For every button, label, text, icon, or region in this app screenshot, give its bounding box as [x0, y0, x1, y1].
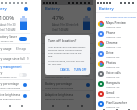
staticText: Show battery percentage [45, 86, 74, 89]
staticText: Battery Saver is off [0, 39, 14, 42]
button[interactable]: Battery usage since full charge [0, 54, 30, 63]
staticText: Battery [45, 6, 60, 12]
button[interactable]: Phone [96, 29, 137, 39]
button[interactable]: Adaptive brightness [42, 91, 93, 101]
staticText: Battery [0, 71, 3, 75]
staticText: Battery percentage [45, 82, 73, 86]
button[interactable]: Recent apps [125, 109, 133, 110]
button[interactable]: Gmail [96, 89, 137, 99]
button[interactable]: Battery usage [42, 44, 93, 53]
staticText: Adaptive brightness [0, 93, 21, 97]
staticText: Used for 19% [106, 35, 121, 38]
staticText: TURN OFF [74, 68, 87, 72]
button[interactable]: Voice calls [96, 69, 137, 79]
staticText: Pixel Launcher [106, 101, 127, 105]
staticText: app. [48, 54, 53, 57]
staticText: Battery [45, 71, 56, 75]
button[interactable]: Recent apps [78, 102, 86, 110]
staticText: About 9 hr 30 min left [0, 23, 20, 27]
staticText: Used for 5% [106, 75, 120, 78]
staticText: Drive [106, 51, 114, 55]
staticText: Battery management [45, 65, 75, 69]
button[interactable]: Photos [96, 59, 137, 69]
staticText: Adaptive battery is on [45, 75, 70, 78]
button[interactable]: Maps Preview [96, 19, 137, 29]
button[interactable]: Battery percentage [42, 80, 93, 90]
staticText: Until 7:00 AM [0, 28, 16, 32]
staticText: Turn off location? [48, 38, 77, 43]
button[interactable]: Back [100, 109, 108, 110]
staticText: Chrome [106, 41, 118, 45]
button[interactable]: Battery usage since full charge [42, 54, 93, 63]
button[interactable]: TURN OFF [73, 67, 88, 73]
staticText: To fix this issue, you can turn off loca… [48, 59, 88, 62]
button[interactable]: Hangouts [96, 79, 137, 89]
button[interactable]: Home [64, 102, 72, 110]
button[interactable]: Battery [42, 70, 93, 79]
button[interactable]: Recent apps [18, 102, 26, 110]
staticText: Adaptive battery is on [0, 75, 17, 78]
button[interactable]: Drive [96, 49, 137, 59]
staticText: Battery [0, 6, 7, 12]
staticText: Optimise brightness level [0, 97, 21, 100]
button[interactable]: Home [6, 102, 14, 110]
staticText: 47% [52, 14, 64, 22]
staticText: CANCEL [60, 68, 70, 72]
staticText: Your phone can't manage battery correctl… [48, 45, 88, 48]
staticText: Used for 4% [106, 85, 120, 88]
staticText: Phone [106, 31, 116, 35]
staticText: Optimise brightness level [45, 97, 74, 100]
staticText: Battery usage [0, 47, 12, 51]
staticText: Used for 17% [106, 45, 121, 48]
staticText: Adaptive brightness [45, 93, 74, 97]
button[interactable]: Battery usage [0, 44, 30, 53]
staticText: Until 7:00 AM [52, 28, 69, 32]
staticText: Use Battery Saver [45, 35, 70, 39]
staticText: About 9 hr 30 min left [52, 23, 79, 27]
staticText: Used for 6% [106, 65, 120, 68]
staticText: Used for 28% [106, 25, 121, 28]
staticText: Battery [99, 6, 114, 12]
button[interactable]: Use Battery Saver [42, 34, 93, 43]
staticText: Battery usage [45, 47, 65, 51]
button[interactable]: Account [87, 7, 91, 11]
staticText: Voice calls [106, 71, 121, 75]
staticText: for this app. [48, 62, 62, 65]
staticText: Used for 8% [106, 55, 120, 58]
button[interactable]: Account [24, 7, 28, 11]
button[interactable]: CANCEL [59, 67, 71, 73]
staticText: Battery Saver is off [45, 39, 67, 42]
button[interactable]: Adaptive brightness [0, 91, 30, 101]
button[interactable]: Home [113, 109, 121, 110]
staticText: App usage since full charge (8 hr ago) [105, 15, 137, 18]
staticText: Battery usage since full charge [0, 57, 27, 61]
staticText: Use Battery Saver [0, 35, 17, 39]
staticText: Battery management [0, 65, 22, 69]
staticText: 8 hr ago [16, 47, 27, 51]
button[interactable]: Chrome [96, 39, 137, 49]
button[interactable]: Back [49, 102, 57, 110]
staticText: Show battery percentage [0, 86, 21, 89]
staticText: Used for 2% [106, 105, 120, 108]
button[interactable]: Battery percentage [0, 80, 30, 90]
staticText: your location when you're not using the [48, 51, 88, 54]
button[interactable]: Use Battery Saver [0, 34, 30, 43]
button[interactable]: Pixel Launcher [96, 99, 137, 109]
staticText: Photos [106, 61, 116, 65]
staticText: Battery percentage [0, 82, 20, 86]
staticText: 100% [0, 14, 15, 22]
staticText: Hangouts [106, 81, 121, 85]
staticText: 8 hr ago [79, 47, 90, 51]
staticText: Used for 3% [106, 95, 120, 98]
staticText: because Make Thumbs brakes requesting [48, 48, 88, 51]
staticText: Gmail [106, 91, 115, 95]
staticText: Maps Preview [106, 21, 126, 25]
button[interactable]: Battery [0, 70, 30, 79]
